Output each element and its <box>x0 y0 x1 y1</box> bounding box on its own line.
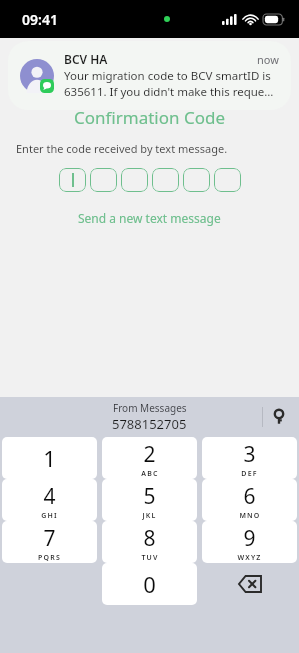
staticText: 5788152705 <box>112 415 187 433</box>
staticText: From Messages <box>113 401 187 415</box>
staticText: GHI <box>41 511 58 521</box>
button[interactable]: 9 <box>202 521 297 563</box>
button[interactable]: 4 <box>2 479 97 521</box>
staticText: 8 <box>143 524 156 553</box>
staticText: Send a new text message <box>78 210 221 226</box>
staticText: DEF <box>241 469 258 479</box>
staticText: 0 <box>143 569 156 599</box>
button[interactable] <box>183 168 210 192</box>
button[interactable]: 5 <box>102 479 197 521</box>
button[interactable] <box>214 168 241 192</box>
button[interactable] <box>59 168 86 192</box>
staticText: 9 <box>243 524 256 553</box>
staticText: MNO <box>239 511 261 521</box>
staticText: Enter the code received by text message. <box>16 141 283 156</box>
button[interactable]: 1 <box>2 437 97 479</box>
button[interactable]: 7 <box>2 521 97 563</box>
staticText: TUV <box>141 553 159 563</box>
staticText: Your migration code to BCV smartID is <box>64 68 271 84</box>
staticText: ABC <box>141 469 159 479</box>
button[interactable]: 8 <box>102 521 197 563</box>
button[interactable] <box>152 168 179 192</box>
button[interactable]: Send a new text message <box>74 206 225 230</box>
button[interactable] <box>121 168 148 192</box>
staticText: JKL <box>142 511 157 521</box>
staticText: 5 <box>143 482 156 511</box>
staticText: 7 <box>43 524 56 553</box>
staticText: 09:41 <box>22 10 58 29</box>
staticText: WXYZ <box>237 553 262 563</box>
button[interactable]: 3 <box>202 437 297 479</box>
button[interactable]: 6 <box>202 479 297 521</box>
button[interactable]: 0 <box>102 563 197 605</box>
staticText: 1 <box>43 443 56 473</box>
button[interactable] <box>90 168 117 192</box>
staticText: BCV HA <box>64 51 257 67</box>
staticText: 4 <box>43 482 56 511</box>
button[interactable]: 2 <box>102 437 197 479</box>
staticText: 2 <box>143 440 156 469</box>
staticText: now <box>257 52 279 67</box>
staticText: 3 <box>243 440 256 469</box>
button[interactable]: BCV HA <box>8 41 291 110</box>
staticText: PQRS <box>38 553 61 563</box>
button[interactable]: Passwords <box>267 405 291 429</box>
staticText: Confirmation Code <box>74 106 226 129</box>
button[interactable]: Backspace <box>202 563 297 605</box>
staticText: 635611. If you didn't make this reque… <box>64 84 274 100</box>
staticText: 6 <box>243 482 256 511</box>
